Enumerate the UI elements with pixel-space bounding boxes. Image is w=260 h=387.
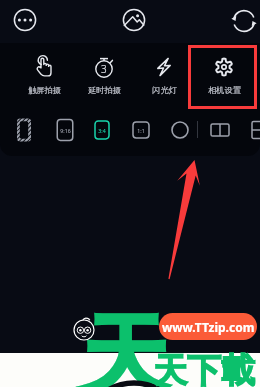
staticText: 天 xyxy=(82,302,168,387)
button[interactable]: Switch camera xyxy=(231,8,257,34)
button[interactable]: 3 xyxy=(74,55,134,95)
button[interactable]: 9:16 xyxy=(52,117,78,143)
button[interactable]: Circle xyxy=(166,117,194,143)
button[interactable]: More options xyxy=(12,7,38,33)
staticText: 9:16 xyxy=(60,127,71,134)
staticText: 闪光灯 xyxy=(152,85,177,95)
staticText: 3 xyxy=(101,62,107,76)
staticText: 1:1 xyxy=(137,127,145,134)
button[interactable]: 闪光灯 xyxy=(134,55,194,95)
staticText: 触屏拍摄 xyxy=(28,85,61,95)
staticText: 相机设置 xyxy=(208,85,241,95)
button[interactable]: Full screen xyxy=(12,117,36,143)
button[interactable]: Grid xyxy=(249,117,260,143)
staticText: 3:4 xyxy=(98,127,106,134)
staticText: www.TTzip.com xyxy=(162,319,255,335)
staticText: 延时拍摄 xyxy=(88,85,121,95)
button[interactable]: 相机设置 xyxy=(194,55,254,95)
button[interactable]: 1:1 xyxy=(127,117,155,143)
button[interactable]: Two pane xyxy=(208,117,232,143)
staticText: 天下載 xyxy=(153,349,255,387)
button[interactable]: 触屏拍摄 xyxy=(14,55,74,95)
button[interactable]: Gallery xyxy=(121,7,147,33)
button[interactable]: 3:4 xyxy=(89,117,115,143)
